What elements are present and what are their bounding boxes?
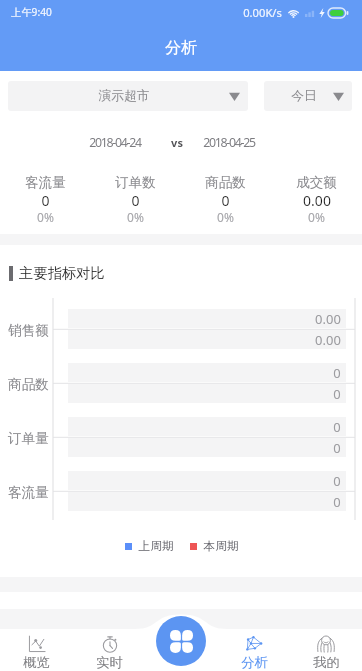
staticText: 0: [333, 418, 341, 436]
button[interactable]: 演示超市: [8, 81, 248, 111]
button[interactable]: 客流量: [0, 165, 90, 234]
staticText: 0: [333, 385, 341, 403]
staticText: 0.00: [315, 331, 341, 349]
staticText: 0%: [308, 209, 325, 225]
staticText: 上周期: [138, 539, 174, 554]
staticText: 0: [333, 364, 341, 382]
button[interactable]: 概览: [0, 629, 73, 671]
staticText: 0: [333, 472, 341, 490]
staticText: 实时: [96, 654, 123, 671]
button[interactable]: 实时: [73, 629, 146, 671]
staticText: 订单量: [8, 430, 49, 447]
staticText: 0: [41, 191, 50, 210]
staticText: 概览: [23, 654, 50, 671]
staticText: 我的: [313, 654, 340, 671]
staticText: 0: [333, 439, 341, 457]
staticText: 销售额: [8, 322, 49, 339]
staticText: 主要指标对比: [19, 264, 105, 282]
staticText: 2018-04-25: [203, 134, 255, 151]
staticText: 2018-04-24: [89, 134, 141, 151]
staticText: 分析: [241, 654, 268, 671]
staticText: 演示超市: [98, 88, 150, 104]
staticText: 商品数: [205, 174, 246, 191]
button[interactable]: 分析: [218, 629, 290, 671]
staticText: 0: [131, 191, 140, 210]
staticText: 客流量: [8, 484, 49, 501]
staticText: 0%: [37, 209, 54, 225]
staticText: 0: [221, 191, 230, 210]
staticText: 0: [333, 493, 341, 511]
staticText: 0.00: [303, 191, 331, 210]
staticText: 订单数: [115, 174, 156, 191]
staticText: 商品数: [8, 376, 49, 393]
button[interactable]: 商品数: [180, 165, 271, 234]
button[interactable]: 我的: [290, 629, 362, 671]
staticText: 今日: [291, 88, 317, 104]
staticText: 上午9:40: [11, 5, 52, 19]
staticText: 本周期: [203, 539, 239, 554]
button[interactable]: 订单数: [90, 165, 180, 234]
staticText: 成交额: [296, 174, 337, 191]
button[interactable]: 今日: [264, 81, 352, 111]
button[interactable]: Apps: [156, 616, 206, 666]
staticText: 0%: [127, 209, 144, 225]
staticText: 客流量: [25, 174, 66, 191]
staticText: 分析: [165, 38, 197, 58]
staticText: 0.00K/s: [243, 5, 282, 20]
button[interactable]: 成交额: [271, 165, 362, 234]
staticText: 0%: [217, 209, 234, 225]
staticText: 0.00: [315, 310, 341, 328]
staticText: vs: [171, 135, 183, 150]
